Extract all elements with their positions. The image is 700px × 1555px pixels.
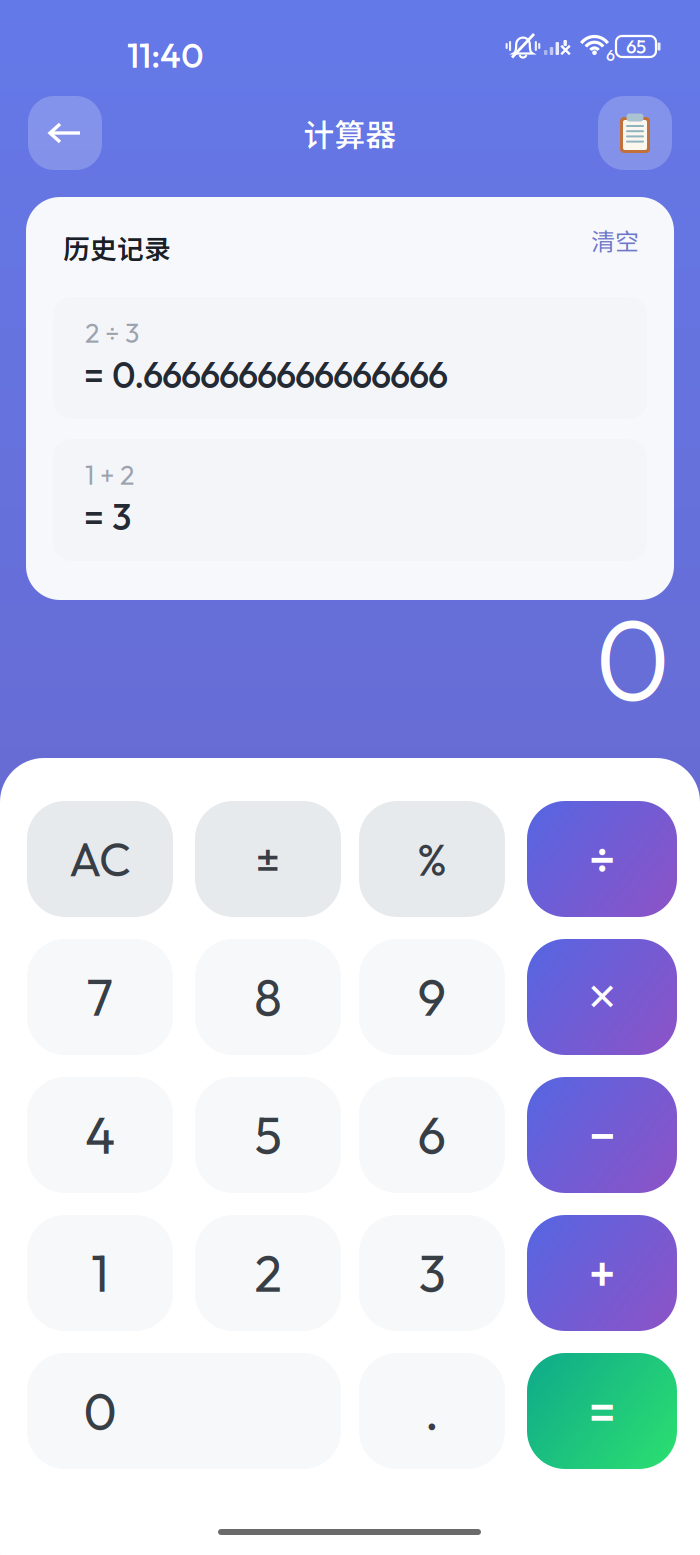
staticText: 65	[626, 35, 646, 58]
button[interactable]: 2	[195, 1215, 341, 1331]
staticText: AC	[69, 830, 131, 888]
button[interactable]: 7	[27, 939, 173, 1055]
staticText: 9	[417, 965, 446, 1029]
button[interactable]: .	[359, 1353, 505, 1469]
button[interactable]: 0	[27, 1353, 341, 1469]
staticText: =	[84, 494, 104, 539]
button[interactable]: 5	[195, 1077, 341, 1193]
staticText: 2 ÷ 3	[85, 316, 139, 350]
button[interactable]: 6	[359, 1077, 505, 1193]
staticText: 1 + 2	[85, 458, 134, 492]
staticText: 6	[417, 1103, 446, 1167]
button[interactable]: 9	[359, 939, 505, 1055]
staticText: 清空	[591, 223, 639, 257]
staticText: 6	[606, 45, 615, 65]
staticText: 3	[112, 494, 131, 539]
staticText: .	[424, 1379, 439, 1443]
staticText: %	[417, 830, 447, 887]
staticText: 11:40	[127, 33, 204, 77]
staticText: =	[84, 352, 104, 397]
staticText: 8	[254, 965, 282, 1029]
button[interactable]: ✕	[527, 939, 677, 1055]
button[interactable]: Back	[28, 96, 102, 170]
staticText: 2	[254, 1241, 281, 1305]
button[interactable]: −	[527, 1077, 677, 1193]
staticText: 7	[86, 965, 113, 1029]
staticText: +	[589, 1243, 615, 1303]
staticText: 5	[254, 1103, 281, 1167]
staticText: =	[589, 1381, 615, 1441]
staticText: −	[589, 1105, 615, 1165]
staticText: 1	[91, 1241, 109, 1305]
button[interactable]: 1	[27, 1215, 173, 1331]
staticText: 计算器	[303, 111, 396, 155]
staticText: 3	[418, 1241, 445, 1305]
button[interactable]: ÷	[527, 801, 677, 917]
staticText: 4	[85, 1103, 115, 1167]
button[interactable]: =	[527, 1353, 677, 1469]
staticText: 0	[595, 586, 670, 730]
button[interactable]: AC	[27, 801, 173, 917]
staticText: 0.6666666666666666	[112, 352, 448, 397]
staticText: 历史记录	[63, 228, 171, 267]
button[interactable]: 3	[359, 1215, 505, 1331]
staticText: ✕	[586, 975, 617, 1019]
button[interactable]: 8	[195, 939, 341, 1055]
button[interactable]: %	[359, 801, 505, 917]
button[interactable]: 4	[27, 1077, 173, 1193]
staticText: 0	[83, 1379, 116, 1443]
button[interactable]: ±	[195, 801, 341, 917]
staticText: ±	[255, 830, 280, 887]
button[interactable]: 清空	[519, 218, 639, 262]
button[interactable]: +	[527, 1215, 677, 1331]
button[interactable]: History	[598, 96, 672, 170]
staticText: ÷	[589, 829, 615, 889]
